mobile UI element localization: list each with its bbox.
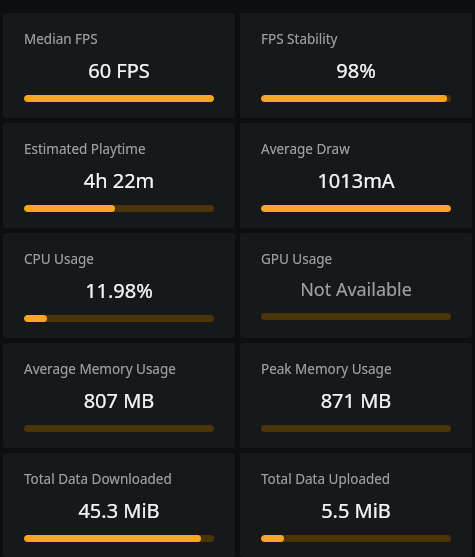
staticText: Not Available bbox=[261, 277, 451, 302]
button[interactable]: CPU Usage bbox=[3, 233, 235, 338]
staticText: 4h 22m bbox=[24, 167, 214, 194]
staticText: 45.3 MiB bbox=[24, 497, 214, 524]
button[interactable]: Total Data Uploaded bbox=[240, 453, 472, 557]
staticText: 807 MB bbox=[24, 387, 214, 414]
staticText: 98% bbox=[261, 57, 451, 84]
staticText: GPU Usage bbox=[261, 250, 333, 268]
staticText: 60 FPS bbox=[24, 57, 214, 84]
button[interactable]: Average Draw bbox=[240, 123, 472, 228]
button[interactable]: Median FPS bbox=[3, 13, 235, 118]
staticText: Average Memory Usage bbox=[24, 360, 176, 378]
button[interactable]: Average Memory Usage bbox=[3, 343, 235, 448]
staticText: 5.5 MiB bbox=[261, 497, 451, 524]
staticText: Median FPS bbox=[24, 30, 98, 48]
staticText: Average Draw bbox=[261, 140, 350, 158]
staticText: 871 MB bbox=[261, 387, 451, 414]
staticText: FPS Stability bbox=[261, 30, 338, 48]
staticText: Peak Memory Usage bbox=[261, 360, 392, 378]
staticText: CPU Usage bbox=[24, 250, 94, 268]
button[interactable]: Estimated Playtime bbox=[3, 123, 235, 228]
staticText: 11.98% bbox=[24, 277, 214, 304]
button[interactable]: Total Data Downloaded bbox=[3, 453, 235, 557]
button[interactable]: Peak Memory Usage bbox=[240, 343, 472, 448]
staticText: Total Data Uploaded bbox=[261, 470, 391, 488]
staticText: Estimated Playtime bbox=[24, 140, 146, 158]
button[interactable]: GPU Usage bbox=[240, 233, 472, 338]
staticText: Total Data Downloaded bbox=[24, 470, 172, 488]
button[interactable]: FPS Stability bbox=[240, 13, 472, 118]
staticText: 1013mA bbox=[261, 167, 451, 194]
